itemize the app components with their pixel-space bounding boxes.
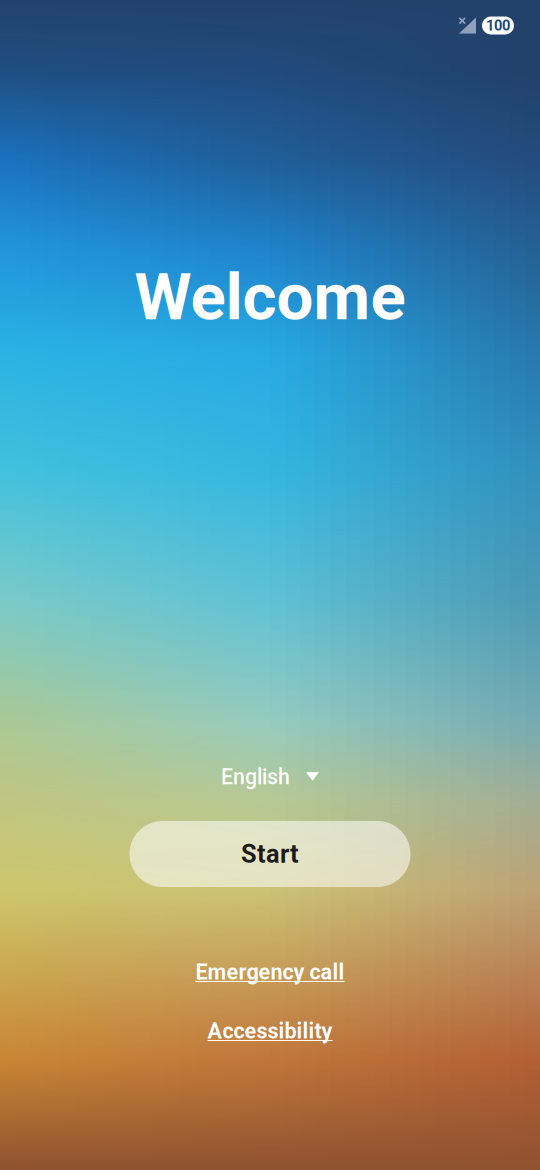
staticText: English bbox=[221, 764, 290, 789]
staticText: Accessibility bbox=[207, 1018, 332, 1044]
staticText: Start bbox=[241, 839, 299, 869]
staticText: Welcome bbox=[134, 259, 405, 335]
button[interactable]: English bbox=[209, 755, 331, 798]
staticText: Emergency call bbox=[195, 959, 344, 985]
button[interactable]: Accessibility bbox=[193, 1010, 346, 1052]
button[interactable]: Emergency call bbox=[181, 951, 358, 993]
button[interactable]: Start bbox=[129, 821, 410, 887]
staticText: 100 bbox=[486, 17, 510, 34]
